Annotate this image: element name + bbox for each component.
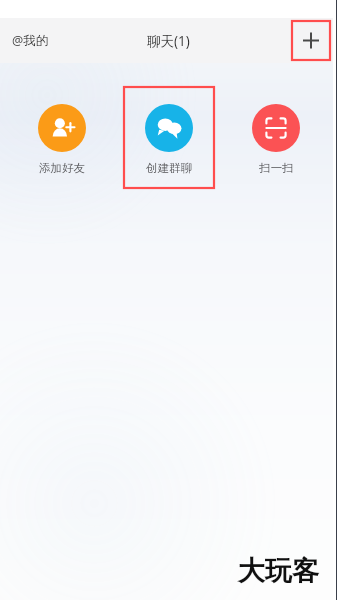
staticText: 添加好友	[39, 161, 85, 175]
other: Create group chat	[145, 104, 193, 152]
button[interactable]: Create group chat	[124, 87, 214, 188]
staticText: 扫一扫	[259, 161, 294, 175]
other: Add friend	[38, 104, 86, 152]
staticText: 聊天(1)	[147, 32, 190, 50]
button[interactable]: Add	[292, 21, 330, 60]
button[interactable]: @我的	[12, 32, 49, 49]
staticText: 创建群聊	[146, 161, 192, 175]
button[interactable]: Scan	[231, 87, 321, 188]
staticText: 大玩客	[238, 554, 319, 588]
other: Scan	[252, 104, 300, 152]
button[interactable]: Add friend	[17, 87, 107, 188]
